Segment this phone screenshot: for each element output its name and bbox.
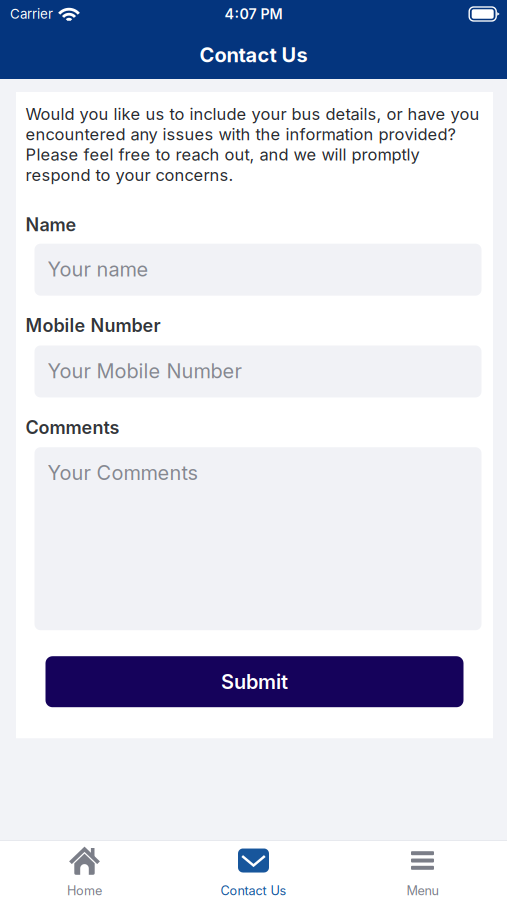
button[interactable]: Your Mobile Number: [34, 345, 481, 397]
staticText: Name: [25, 214, 76, 236]
staticText: Contact Us: [199, 43, 307, 67]
staticText: Mobile Number: [25, 315, 160, 336]
staticText: Contact Us: [220, 883, 286, 898]
button[interactable]: Home: [0, 841, 169, 900]
staticText: Menu: [406, 883, 438, 898]
staticText: Your name: [47, 257, 148, 281]
staticText: Carrier: [10, 6, 53, 22]
staticText: Home: [67, 883, 102, 898]
staticText: Your Comments: [47, 461, 197, 485]
button[interactable]: Submit: [45, 656, 463, 707]
staticText: Would you like us to include your bus de…: [25, 104, 479, 185]
button[interactable]: Menu: [338, 841, 507, 900]
staticText: Comments: [25, 416, 119, 438]
staticText: Submit: [221, 670, 288, 694]
button[interactable]: Your name: [34, 244, 481, 296]
button[interactable]: Contact Us: [169, 841, 338, 900]
staticText: 4:07 PM: [224, 5, 282, 23]
staticText: Your Mobile Number: [47, 359, 241, 383]
button[interactable]: Your Comments: [34, 447, 481, 630]
